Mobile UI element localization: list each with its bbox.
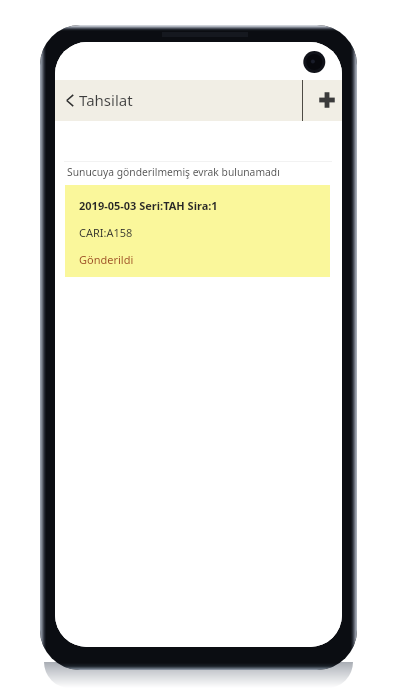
staticText: CARI:A158 bbox=[79, 225, 133, 240]
button[interactable]: 2019-05-03 Seri:TAH Sira:1 bbox=[65, 185, 330, 277]
staticText: Tahsilat bbox=[79, 90, 133, 110]
button[interactable]: Add bbox=[303, 80, 342, 121]
staticText: Gönderildi bbox=[79, 252, 134, 267]
staticText: Sunucuya gönderilmemiş evrak bulunamadı bbox=[67, 165, 280, 179]
staticText: 2019-05-03 Seri:TAH Sira:1 bbox=[79, 198, 218, 213]
button[interactable]: Tahsilat bbox=[55, 80, 302, 121]
